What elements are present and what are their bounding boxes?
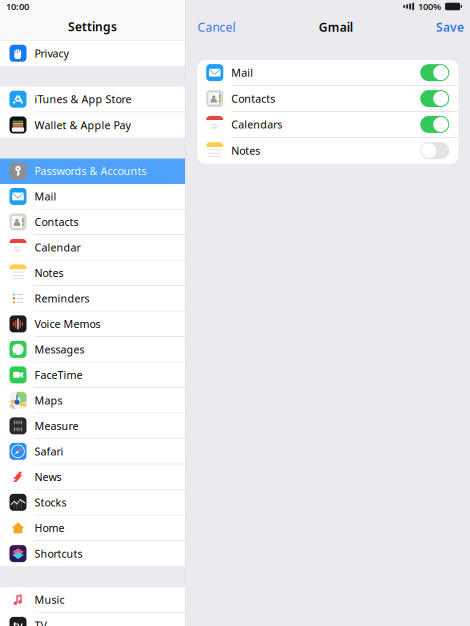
button[interactable]: Messages	[0, 337, 185, 362]
staticText: Maps	[34, 393, 62, 407]
button[interactable]: Stocks	[0, 490, 185, 515]
staticText: Measure	[34, 419, 78, 433]
button[interactable]: Contacts	[0, 209, 185, 235]
staticText: Safari	[34, 444, 63, 458]
staticText: Calendar	[34, 240, 80, 254]
staticText: Mail	[231, 66, 253, 80]
staticText: Notes	[231, 144, 260, 158]
button[interactable]: Contacts	[197, 86, 458, 112]
button[interactable]: Calendar	[0, 235, 185, 260]
button[interactable]: Privacy	[0, 40, 185, 66]
button[interactable]: Safari	[0, 439, 185, 464]
button[interactable]: Reminders	[0, 286, 185, 311]
button[interactable]: Mail	[0, 184, 185, 209]
staticText: FaceTime	[34, 368, 82, 382]
staticText: tv	[13, 618, 23, 626]
staticText: Calendars	[231, 117, 282, 132]
button[interactable]: Measure	[0, 413, 185, 439]
button[interactable]: Notes	[197, 138, 458, 164]
staticText: Voice Memos	[34, 317, 100, 331]
staticText: Save	[436, 19, 464, 35]
button[interactable]: Voice Memos	[0, 311, 185, 337]
button[interactable]: iTunes & App Store	[0, 87, 185, 112]
button[interactable]: Notes	[0, 260, 185, 286]
staticText: Cancel	[197, 19, 235, 35]
staticText: 10:00	[6, 0, 29, 13]
button[interactable]: News	[0, 464, 185, 490]
staticText: Stocks	[34, 495, 66, 509]
staticText: News	[34, 470, 61, 484]
staticText: Mail	[34, 189, 56, 204]
button[interactable]: Mail	[197, 60, 458, 86]
staticText: Contacts	[34, 215, 78, 229]
staticText: Messages	[34, 342, 84, 356]
staticText: Shortcuts	[34, 546, 82, 561]
staticText: 100%	[418, 0, 441, 13]
button[interactable]: Passwords & Accounts	[0, 158, 185, 184]
staticText: Privacy	[34, 46, 68, 60]
button[interactable]: Calendars	[197, 112, 458, 138]
button[interactable]: Music	[0, 587, 185, 613]
staticText: Passwords & Accounts	[34, 164, 146, 178]
button[interactable]: Shortcuts	[0, 541, 185, 566]
button[interactable]: Maps	[0, 388, 185, 413]
staticText: Home	[34, 521, 64, 535]
staticText: Settings	[68, 18, 117, 34]
staticText: Music	[34, 592, 64, 607]
button[interactable]: FaceTime	[0, 362, 185, 388]
button[interactable]: Home	[0, 515, 185, 541]
staticText: Wallet & Apple Pay	[34, 118, 130, 132]
button[interactable]: Wallet & Apple Pay	[0, 112, 185, 138]
staticText: iTunes & App Store	[34, 92, 131, 106]
button[interactable]: Cancel	[197, 19, 235, 35]
staticText: Notes	[34, 266, 63, 280]
button[interactable]: tv	[0, 613, 185, 626]
staticText: Reminders	[34, 291, 89, 305]
staticText: Gmail	[319, 19, 353, 35]
button[interactable]: Save	[436, 19, 464, 35]
staticText: Contacts	[231, 91, 275, 106]
staticText: TV	[34, 618, 46, 626]
